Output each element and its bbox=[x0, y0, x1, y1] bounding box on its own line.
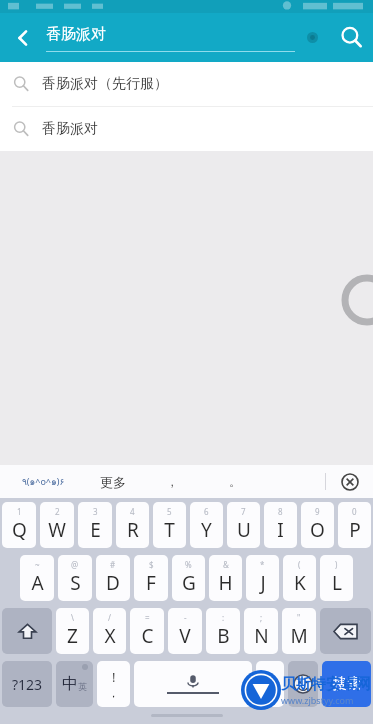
staticText: Y bbox=[201, 517, 212, 543]
button[interactable]: 5 bbox=[153, 502, 186, 548]
staticText: X bbox=[104, 623, 116, 649]
staticText: # bbox=[110, 559, 116, 570]
button[interactable]: # bbox=[96, 555, 130, 601]
button[interactable]: : bbox=[206, 608, 240, 654]
button[interactable]: * bbox=[246, 555, 279, 601]
staticText: ; bbox=[260, 612, 263, 623]
staticText: ~ bbox=[35, 559, 40, 570]
button[interactable]: 中 bbox=[56, 661, 93, 707]
button[interactable]: ? bbox=[256, 661, 284, 707]
button[interactable]: $ bbox=[134, 555, 168, 601]
staticText: O bbox=[310, 517, 325, 543]
staticText: L bbox=[332, 570, 342, 596]
staticText: V bbox=[179, 623, 191, 649]
staticText: ， bbox=[166, 474, 178, 489]
staticText: W bbox=[48, 517, 66, 543]
button[interactable]: Shift bbox=[2, 608, 52, 654]
staticText: 搜索 bbox=[333, 675, 361, 693]
staticText: J bbox=[260, 570, 266, 596]
staticText: N bbox=[254, 623, 269, 649]
button[interactable]: 更多 bbox=[86, 465, 140, 498]
staticText: ， bbox=[108, 686, 119, 700]
staticText: S bbox=[70, 570, 81, 596]
staticText: ? bbox=[267, 669, 273, 687]
button[interactable]: & bbox=[209, 555, 242, 601]
staticText: Q bbox=[12, 517, 27, 543]
button[interactable]: 1 bbox=[2, 502, 36, 548]
staticText: F bbox=[146, 570, 156, 596]
staticText: R bbox=[127, 517, 139, 543]
staticText: 7 bbox=[241, 506, 246, 517]
button[interactable]: ， bbox=[140, 465, 204, 498]
button[interactable]: 9 bbox=[301, 502, 334, 548]
staticText: 1 bbox=[17, 506, 22, 517]
button[interactable]: = bbox=[130, 608, 164, 654]
button[interactable]: ! bbox=[97, 661, 130, 707]
staticText: Z bbox=[67, 623, 78, 649]
staticText: = bbox=[145, 612, 150, 623]
staticText: 。 bbox=[265, 687, 275, 700]
staticText: 中 bbox=[62, 674, 78, 694]
staticText: B bbox=[217, 623, 230, 649]
button[interactable]: 香肠派对（先行服） bbox=[0, 62, 373, 106]
staticText: H bbox=[218, 570, 233, 596]
staticText: D bbox=[106, 570, 120, 596]
staticText: 香肠派对（先行服） bbox=[42, 75, 168, 93]
button[interactable]: 8 bbox=[264, 502, 297, 548]
staticText: 6 bbox=[204, 506, 209, 517]
button[interactable]: ٩(๑^o^๑)۶ bbox=[0, 465, 86, 498]
staticText: www.zjbstyy.com bbox=[281, 694, 354, 706]
staticText: \ bbox=[71, 612, 74, 623]
button[interactable]: Emoji bbox=[288, 661, 318, 707]
button[interactable]: @ bbox=[58, 555, 92, 601]
button[interactable]: 7 bbox=[227, 502, 260, 548]
button[interactable]: 0 bbox=[338, 502, 371, 548]
staticText: K bbox=[294, 570, 306, 596]
button[interactable]: Hide keyboard bbox=[326, 465, 373, 498]
staticText: P bbox=[349, 517, 361, 543]
button[interactable]: Space and voice input bbox=[134, 661, 252, 707]
button[interactable]: Back bbox=[0, 13, 46, 62]
button[interactable]: 2 bbox=[40, 502, 74, 548]
staticText: % bbox=[185, 559, 192, 570]
button[interactable]: 6 bbox=[190, 502, 223, 548]
button[interactable]: 3 bbox=[78, 502, 112, 548]
button[interactable]: 搜索 bbox=[322, 661, 371, 707]
button[interactable]: Clear text bbox=[295, 13, 329, 62]
staticText: M bbox=[290, 623, 308, 649]
staticText: ( bbox=[298, 559, 301, 570]
staticText: 8 bbox=[278, 506, 283, 517]
staticText: & bbox=[223, 559, 229, 570]
button[interactable]: ?123 bbox=[2, 661, 52, 707]
staticText: 香肠派对 bbox=[42, 120, 98, 138]
button[interactable]: 4 bbox=[116, 502, 149, 548]
staticText: 更多 bbox=[100, 474, 126, 490]
staticText: T bbox=[164, 517, 175, 543]
button[interactable]: ) bbox=[320, 555, 353, 601]
staticText: 。 bbox=[229, 474, 241, 489]
staticText: @ bbox=[71, 559, 79, 570]
staticText: 0 bbox=[352, 506, 357, 517]
button[interactable]: \ bbox=[56, 608, 89, 654]
staticText: - bbox=[184, 612, 187, 623]
staticText: G bbox=[182, 570, 196, 596]
staticText: $ bbox=[149, 559, 154, 570]
staticText: / bbox=[108, 612, 111, 623]
button[interactable]: ( bbox=[283, 555, 316, 601]
button[interactable]: " bbox=[282, 608, 316, 654]
staticText: C bbox=[141, 623, 154, 649]
button[interactable]: 香肠派对 bbox=[0, 107, 373, 151]
button[interactable]: Backspace bbox=[320, 608, 371, 654]
button[interactable]: 。 bbox=[204, 465, 266, 498]
button[interactable]: ~ bbox=[20, 555, 54, 601]
staticText: ?123 bbox=[12, 675, 43, 694]
button[interactable]: / bbox=[93, 608, 126, 654]
button[interactable]: ; bbox=[244, 608, 278, 654]
button[interactable]: Search bbox=[329, 13, 373, 62]
staticText: ! bbox=[112, 668, 116, 686]
staticText: 5 bbox=[167, 506, 172, 517]
staticText: ) bbox=[335, 559, 338, 570]
button[interactable]: % bbox=[172, 555, 205, 601]
staticText: 贝斯特安卓网 bbox=[281, 675, 371, 694]
button[interactable]: - bbox=[168, 608, 202, 654]
